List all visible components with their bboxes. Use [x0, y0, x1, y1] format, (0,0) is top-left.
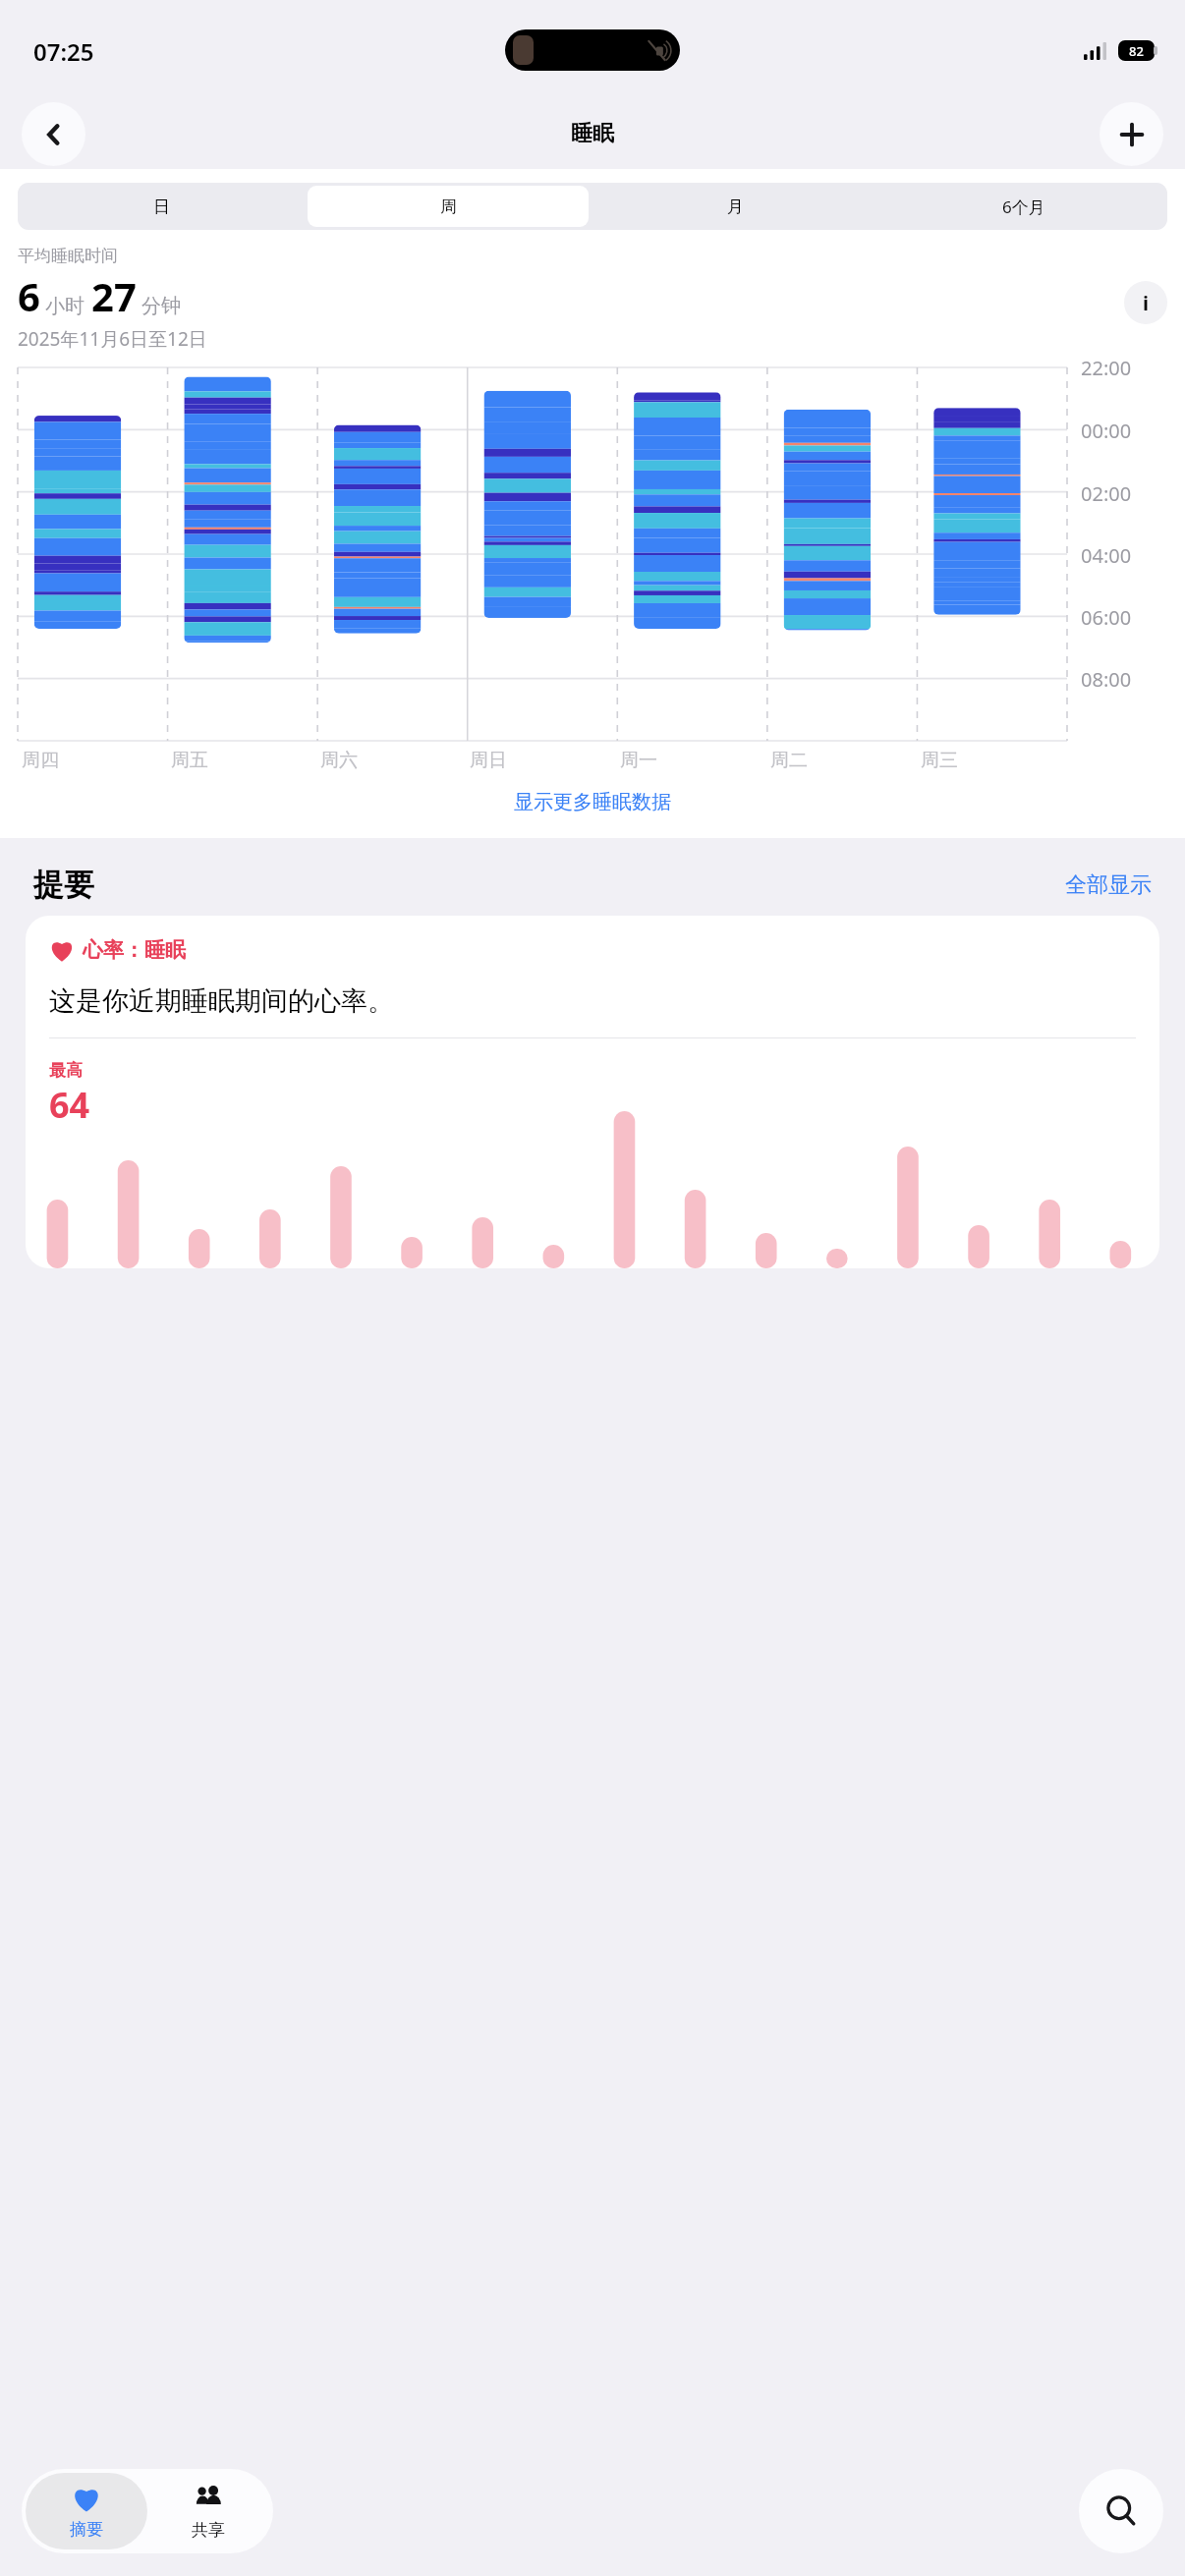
staticText: 07:25 [33, 35, 94, 68]
staticText: 周一 [620, 749, 657, 772]
staticText: 82 [1129, 42, 1144, 60]
staticText: 周日 [470, 749, 507, 772]
staticText: 睡眠 [571, 120, 614, 147]
button[interactable]: Info [1124, 281, 1167, 324]
button[interactable]: 摘要 [26, 2473, 147, 2549]
staticText: 02:00 [1081, 480, 1132, 507]
button[interactable]: 显示更多睡眠数据 [0, 776, 1185, 828]
button[interactable]: 共享 [147, 2473, 269, 2549]
staticText: 分钟 [141, 294, 181, 318]
staticText: 提要 [33, 866, 94, 904]
button[interactable]: Back [22, 102, 85, 166]
staticText: 06:00 [1081, 604, 1132, 631]
button[interactable]: Add [1100, 102, 1163, 166]
staticText: 2025年11月6日至12日 [18, 326, 207, 352]
staticText: 22:00 [1081, 355, 1132, 381]
button[interactable]: 心率：睡眠 [26, 916, 1159, 1268]
staticText: 周三 [921, 749, 958, 772]
staticText: 周四 [22, 749, 59, 772]
staticText: 周六 [320, 749, 358, 772]
staticText: 04:00 [1081, 542, 1132, 569]
button[interactable]: 全部显示 [1065, 871, 1152, 899]
staticText: 平均睡眠时间 [18, 246, 118, 266]
staticText: 摘要 [70, 2519, 103, 2540]
staticText: 周五 [171, 749, 208, 772]
staticText: 日 [153, 196, 170, 217]
button[interactable]: 6个月 [882, 186, 1164, 227]
staticText: 最高 [49, 1060, 83, 1081]
staticText: 心率：睡眠 [83, 937, 186, 963]
staticText: 这是你近期睡眠期间的心率。 [49, 984, 394, 1018]
button[interactable]: 月 [594, 186, 876, 227]
staticText: 小时 [45, 294, 85, 318]
staticText: 周二 [770, 749, 808, 772]
staticText: 周 [440, 196, 457, 217]
button[interactable]: 日 [21, 186, 302, 227]
staticText: 27 [91, 269, 137, 322]
staticText: 6 [18, 269, 40, 322]
staticText: 全部显示 [1065, 871, 1152, 899]
staticText: 显示更多睡眠数据 [514, 790, 671, 814]
staticText: i [1143, 290, 1149, 316]
button[interactable]: 周 [308, 186, 589, 227]
staticText: 月 [727, 196, 744, 217]
staticText: 共享 [192, 2520, 225, 2541]
staticText: 6个月 [1002, 196, 1045, 218]
staticText: 64 [49, 1081, 90, 1129]
staticText: 08:00 [1081, 666, 1132, 693]
staticText: 00:00 [1081, 418, 1132, 444]
button[interactable]: Search [1079, 2469, 1163, 2553]
